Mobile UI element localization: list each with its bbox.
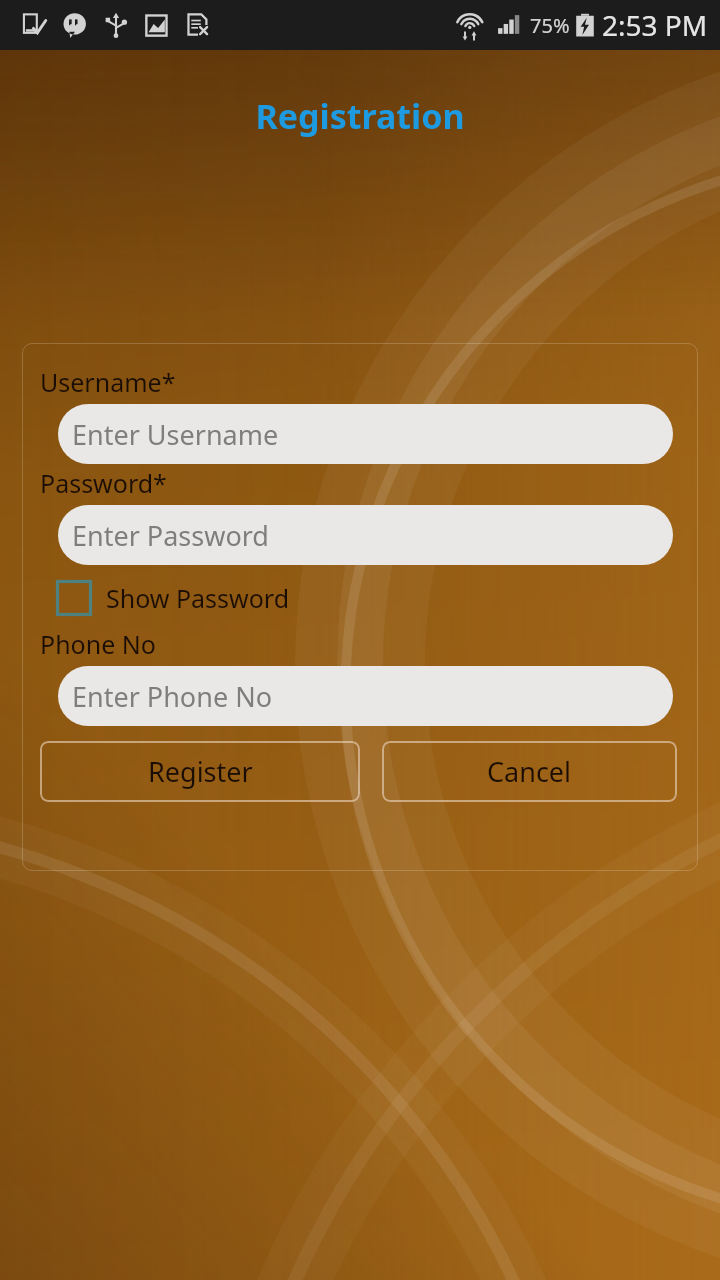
staticText: 75% <box>530 12 570 39</box>
staticText: Register <box>148 753 253 790</box>
staticText: Cancel <box>487 753 572 790</box>
button[interactable]: Cancel <box>382 741 677 802</box>
button[interactable]: Show Password <box>56 574 290 622</box>
staticText: 2:53 PM <box>602 6 708 44</box>
staticText: Show Password <box>106 581 290 615</box>
staticText: Password* <box>40 466 167 500</box>
staticText: Registration <box>0 93 720 139</box>
button[interactable]: Register <box>40 741 360 802</box>
staticText: Username* <box>40 365 176 399</box>
staticText: Enter Phone No <box>72 678 272 715</box>
button[interactable]: Enter Username <box>58 404 673 464</box>
staticText: Enter Password <box>72 517 269 554</box>
staticText: Enter Username <box>72 416 279 453</box>
button[interactable]: Enter Phone No <box>58 666 673 726</box>
button[interactable]: Enter Password <box>58 505 673 565</box>
staticText: Phone No <box>40 627 156 661</box>
